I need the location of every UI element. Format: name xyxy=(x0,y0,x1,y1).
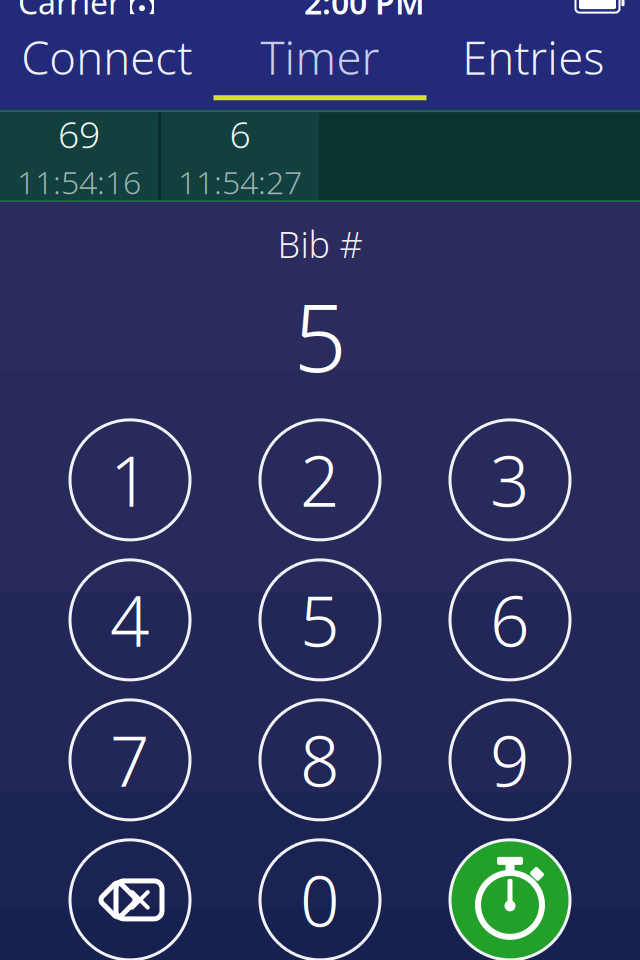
staticText: 4 xyxy=(110,574,150,666)
staticText: Timer xyxy=(260,27,379,87)
staticText: 11:54:27 xyxy=(178,161,302,203)
staticText: 6 xyxy=(229,109,250,159)
button[interactable]: 4 xyxy=(35,550,225,690)
button[interactable]: Connect xyxy=(0,22,213,110)
staticText: 7 xyxy=(110,714,150,806)
staticText: 8 xyxy=(300,714,340,806)
button[interactable]: Record time xyxy=(415,830,605,960)
staticText: 0 xyxy=(300,854,340,946)
button[interactable]: 3 xyxy=(415,410,605,550)
staticText: 11:54:16 xyxy=(17,161,141,203)
button[interactable]: 6 xyxy=(415,550,605,690)
staticText: 69 xyxy=(58,109,100,159)
button[interactable]: 7 xyxy=(35,690,225,830)
button[interactable]: Timer xyxy=(213,22,427,110)
staticText: 2:00 PM xyxy=(304,0,425,23)
button[interactable]: 9 xyxy=(415,690,605,830)
button[interactable]: Entries xyxy=(427,22,640,110)
staticText: 6 xyxy=(490,574,530,666)
staticText: 9 xyxy=(490,714,530,806)
button[interactable]: 5 xyxy=(225,550,415,690)
staticText: 3 xyxy=(490,434,530,526)
button[interactable]: 8 xyxy=(225,690,415,830)
staticText: 5 xyxy=(300,574,340,666)
staticText: 1 xyxy=(110,434,150,526)
button[interactable]: 1 xyxy=(35,410,225,550)
button[interactable]: 2 xyxy=(225,410,415,550)
staticText: Bib # xyxy=(277,220,362,268)
button[interactable]: 0 xyxy=(225,830,415,960)
staticText: Carrier xyxy=(18,0,121,23)
staticText: Connect xyxy=(21,27,192,87)
staticText: 5 xyxy=(293,274,346,398)
staticText: 2 xyxy=(300,434,340,526)
button[interactable]: Delete xyxy=(35,830,225,960)
staticText: Entries xyxy=(462,27,604,87)
